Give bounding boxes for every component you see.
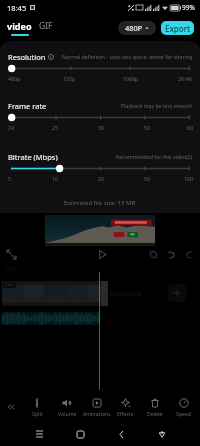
staticText: Recommended for this video(2) [116, 153, 193, 160]
staticText: Volume [58, 410, 77, 417]
staticText: 24 [8, 124, 14, 131]
staticText: 60 [187, 124, 193, 131]
staticText: video [7, 20, 32, 32]
button[interactable]: Effects [146, 247, 160, 261]
button[interactable]: Volume [52, 392, 82, 422]
button[interactable] [8, 64, 193, 73]
staticText: 25 [52, 124, 58, 131]
staticText: Frame rate [8, 101, 47, 110]
staticText: Bitrate (Mbps) [8, 152, 58, 161]
staticText: 10 [52, 175, 58, 182]
staticText: 50 [144, 175, 150, 182]
staticText: 00:00 [4, 266, 17, 273]
button[interactable]: Split [22, 392, 52, 422]
staticText: Speed [176, 410, 192, 417]
button[interactable]: Animations [82, 392, 111, 422]
staticText: 480P [125, 23, 143, 33]
button[interactable]: Back [111, 424, 131, 444]
button[interactable]: Screenshot [152, 424, 172, 444]
staticText: 99% [182, 3, 195, 12]
button[interactable] [8, 113, 193, 122]
button[interactable]: video [7, 20, 32, 36]
staticText: Export [165, 23, 191, 34]
button[interactable] [8, 164, 193, 173]
staticText: 480p [8, 75, 21, 82]
button[interactable]: Add media [168, 284, 186, 302]
button[interactable]: Effects [111, 392, 140, 422]
button[interactable]: 480P [118, 21, 156, 35]
staticText: 20 [98, 175, 104, 182]
staticText: Effects [117, 410, 134, 417]
button[interactable]: Export [161, 21, 194, 35]
button[interactable]: Speed [169, 392, 198, 422]
staticText: 720p [63, 75, 76, 82]
staticText: 50 [144, 124, 150, 131]
staticText: 30 [98, 124, 104, 131]
staticText: Animations [83, 410, 111, 417]
staticText: 1080p [123, 75, 139, 82]
staticText: Playback may be less smooth [121, 102, 193, 109]
button[interactable]: Play [95, 247, 109, 261]
button[interactable]: Recent apps [29, 424, 49, 444]
button[interactable]: Add ending [110, 285, 142, 302]
staticText: Split [32, 410, 43, 417]
button[interactable]: GIF [39, 20, 53, 37]
staticText: 1.0x [5, 282, 14, 288]
button[interactable]: Home [70, 424, 90, 444]
button[interactable]: Undo [164, 247, 178, 261]
button[interactable]: Redo [182, 247, 196, 261]
staticText: GIF [39, 20, 53, 32]
staticText: Resolution [8, 52, 46, 61]
button[interactable]: Delete [140, 392, 169, 422]
staticText: 2K/4K [178, 75, 193, 82]
staticText: 100 [184, 175, 193, 182]
button[interactable]: Fullscreen [4, 247, 18, 261]
staticText: Estimated file size: 13 MB [64, 199, 136, 207]
staticText: Add ending [110, 290, 142, 298]
staticText: Delete [147, 410, 163, 417]
staticText: 18:45 [7, 3, 27, 13]
staticText: Normal definition - uses less space, bet… [62, 53, 193, 60]
staticText: 5 [8, 175, 11, 182]
button[interactable]: Collapse toolbar [0, 392, 22, 422]
